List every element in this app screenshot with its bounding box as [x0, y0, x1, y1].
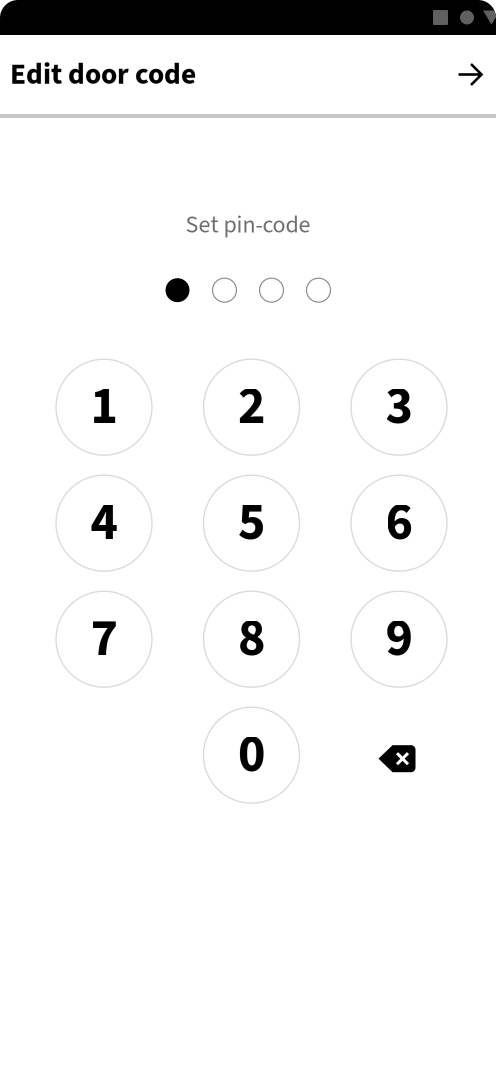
staticText: 4: [90, 486, 117, 560]
button[interactable]: Delete: [351, 707, 447, 803]
staticText: 8: [238, 602, 265, 676]
staticText: Set pin-code: [185, 208, 310, 242]
staticText: 9: [385, 602, 412, 676]
staticText: 6: [385, 486, 412, 560]
staticText: 0: [238, 718, 265, 792]
button[interactable]: 0: [203, 707, 299, 803]
staticText: 7: [90, 602, 117, 676]
staticText: 1: [90, 370, 117, 444]
button[interactable]: 8: [203, 591, 299, 687]
button[interactable]: 1: [56, 359, 152, 455]
button[interactable]: 4: [56, 475, 152, 571]
staticText: 2: [238, 370, 265, 444]
button[interactable]: 6: [351, 475, 447, 571]
button[interactable]: 5: [203, 475, 299, 571]
button[interactable]: Next: [446, 50, 494, 98]
staticText: 3: [385, 370, 412, 444]
button[interactable]: 7: [56, 591, 152, 687]
staticText: 5: [238, 486, 265, 560]
button[interactable]: 2: [203, 359, 299, 455]
button[interactable]: 3: [351, 359, 447, 455]
staticText: Edit door code: [10, 54, 196, 95]
button[interactable]: 9: [351, 591, 447, 687]
